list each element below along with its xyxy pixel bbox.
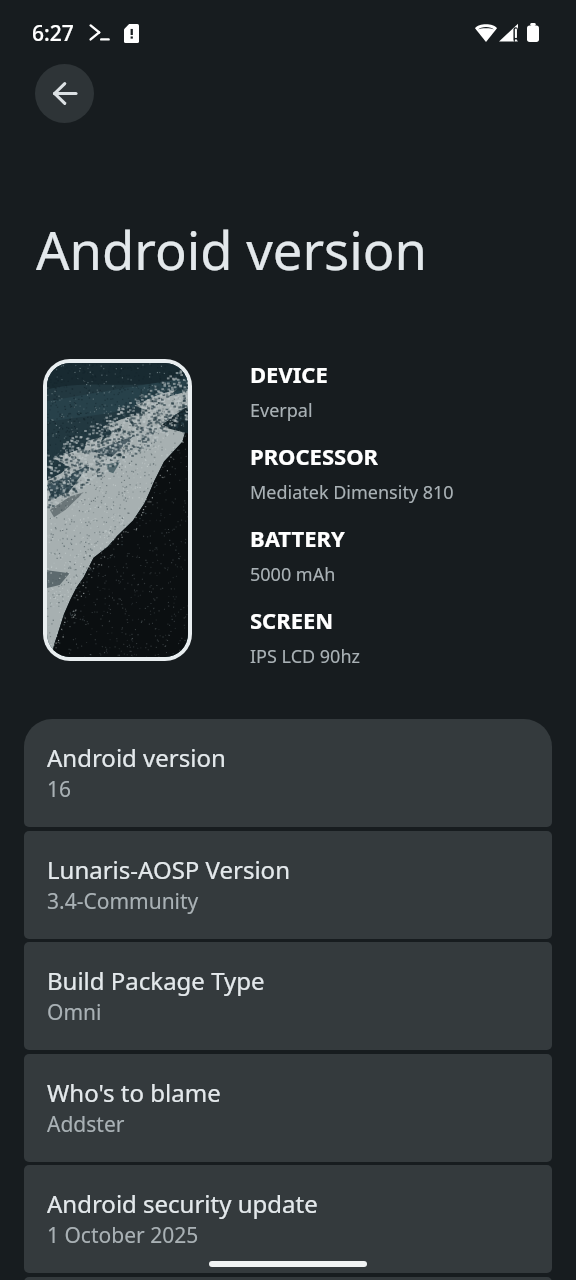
staticText: DEVICE — [250, 359, 328, 389]
staticText: Android version — [47, 741, 226, 774]
staticText: 5000 mAh — [250, 562, 336, 587]
staticText: IPS LCD 90hz — [250, 644, 360, 669]
button[interactable]: Who's to blame — [24, 1054, 552, 1162]
staticText: Android version — [36, 214, 428, 286]
staticText: PROCESSOR — [250, 441, 379, 471]
staticText: Everpal — [250, 398, 313, 423]
button[interactable]: Build Package Type — [24, 942, 552, 1050]
staticText: Omni — [47, 998, 102, 1027]
staticText: Build Package Type — [47, 964, 265, 997]
staticText: Android security update — [47, 1187, 318, 1220]
button[interactable]: Android version — [24, 719, 552, 827]
staticText: 3.4-Community — [47, 887, 199, 916]
staticText: Mediatek Dimensity 810 — [250, 480, 454, 505]
button[interactable]: Lunaris-AOSP Version — [24, 831, 552, 939]
staticText: Lunaris-AOSP Version — [47, 853, 290, 886]
staticText: Addster — [47, 1110, 125, 1139]
staticText: 1 October 2025 — [47, 1221, 199, 1250]
staticText: 16 — [47, 775, 72, 804]
button[interactable]: Android security update — [24, 1165, 552, 1273]
staticText: 6:27 — [32, 19, 74, 48]
button[interactable]: Back — [35, 64, 94, 123]
staticText: BATTERY — [250, 523, 345, 553]
staticText: Who's to blame — [47, 1076, 221, 1109]
staticText: SCREEN — [250, 605, 334, 635]
